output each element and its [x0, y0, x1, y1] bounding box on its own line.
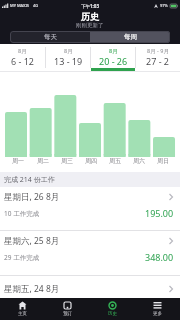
staticText: 4G	[33, 3, 39, 8]
staticText: 8月	[18, 47, 27, 55]
staticText: 13 - 19	[54, 55, 83, 67]
staticText: 更多	[153, 311, 162, 317]
staticText: 星期五, 24 8月	[4, 283, 60, 295]
button[interactable]: 更多	[135, 298, 180, 320]
button[interactable]: 8月	[0, 44, 45, 71]
staticText: 周日	[157, 157, 169, 165]
staticText: 周二	[37, 157, 49, 165]
button[interactable]: 历史	[90, 298, 135, 320]
button[interactable]: 8月 - 9月	[136, 44, 180, 71]
staticText: 20 - 26	[99, 55, 128, 67]
staticText: 周五	[109, 157, 121, 165]
staticText: 23 工作完成	[4, 301, 40, 310]
staticText: 6 - 12	[11, 55, 35, 67]
staticText: 周三	[61, 157, 73, 165]
staticText: 刚刚更新了	[76, 22, 104, 28]
staticText: MY MAXIS	[10, 3, 30, 8]
staticText: 完成 214 份工作	[4, 175, 55, 185]
staticText: 8月 - 9月	[147, 47, 169, 55]
staticText: 每天	[44, 33, 57, 41]
button[interactable]: 每天	[10, 31, 90, 43]
staticText: 29 工作完成	[4, 253, 40, 262]
staticText: 主页	[18, 311, 27, 317]
button[interactable]: 星期五, 24 8月	[0, 276, 180, 320]
staticText: 周四	[85, 157, 97, 165]
staticText: 星期日, 26 8月	[4, 191, 60, 203]
button[interactable]: 每周	[90, 31, 170, 43]
button[interactable]: 主页	[0, 298, 45, 320]
staticText: 348.00	[145, 251, 174, 263]
staticText: 星期六, 25 8月	[4, 235, 60, 247]
staticText: 每周	[124, 33, 137, 41]
button[interactable]: 星期日, 26 8月	[0, 187, 180, 230]
staticText: 预订	[63, 311, 72, 317]
staticText: 周六	[133, 157, 145, 165]
staticText: 历史	[81, 11, 99, 22]
staticText: 195.00	[145, 207, 174, 219]
staticText: 周一	[12, 157, 24, 165]
staticText: 276.00	[145, 299, 174, 311]
staticText: 97%	[160, 3, 168, 8]
button[interactable]: 预订	[45, 298, 90, 320]
staticText: 10 工作完成	[4, 209, 40, 218]
button[interactable]: 8月	[91, 44, 135, 71]
button[interactable]: 8月	[46, 44, 90, 71]
staticText: 8月	[64, 47, 73, 55]
staticText: 27 - 2	[146, 55, 170, 67]
staticText: 下午1:03	[81, 3, 99, 9]
staticText: 历史	[108, 311, 117, 317]
staticText: 8月	[109, 47, 118, 55]
button[interactable]: 星期六, 25 8月	[0, 231, 180, 275]
